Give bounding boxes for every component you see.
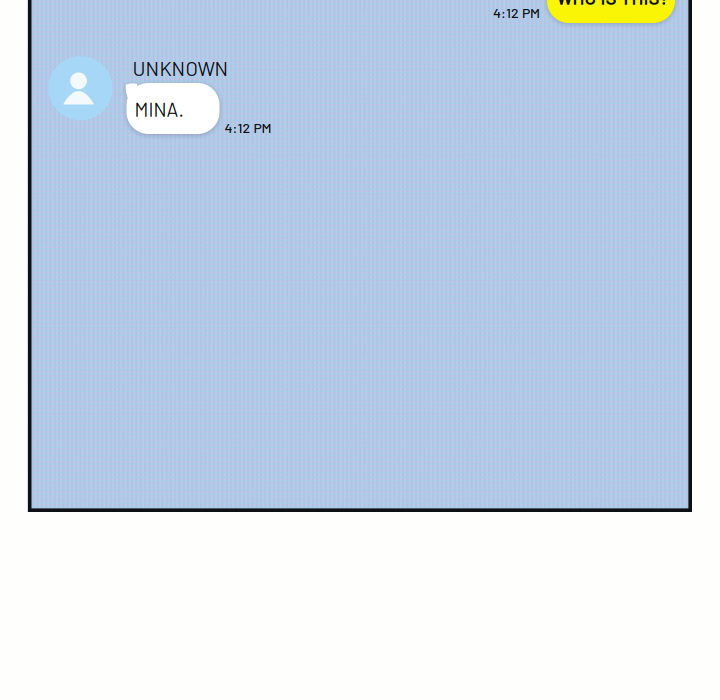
staticText: UNKNOWN <box>132 56 228 80</box>
staticText: 4:12 PM <box>224 119 271 136</box>
staticText: MINA. <box>134 97 183 121</box>
button[interactable]: Contact avatar, unknown sender <box>48 56 112 120</box>
button[interactable]: MINA. <box>126 83 219 134</box>
staticText: 4:12 PM <box>493 4 540 21</box>
staticText: WHO IS THIS? <box>556 0 668 8</box>
button[interactable]: WHO IS THIS? <box>547 0 675 23</box>
